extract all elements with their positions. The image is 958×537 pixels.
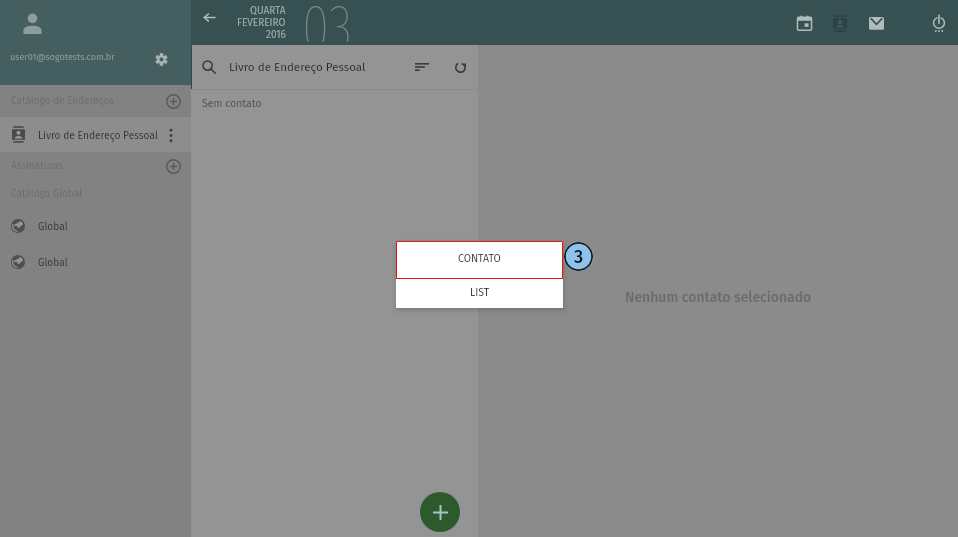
button[interactable]: Mail — [858, 5, 894, 41]
staticText: 3 — [574, 246, 584, 268]
staticText: LIST — [470, 286, 490, 299]
staticText: FEVEREIRO — [237, 17, 286, 29]
button[interactable]: Add contact — [420, 492, 460, 532]
staticText: Sem contato — [202, 97, 262, 110]
staticText: Global — [38, 256, 68, 268]
staticText: QUARTA — [250, 5, 286, 17]
staticText: Livro de Endereço Pessoal — [38, 129, 158, 141]
button[interactable]: CONTATO — [396, 241, 563, 279]
button[interactable]: Contacts — [822, 5, 858, 41]
button[interactable]: Add — [162, 155, 184, 177]
staticText: Assinaturas — [11, 160, 64, 172]
button[interactable]: Calendar — [786, 5, 822, 41]
button[interactable]: Settings — [150, 48, 172, 70]
button[interactable]: Add — [162, 90, 184, 112]
staticText: 03 — [302, 0, 353, 42]
button[interactable]: Search — [196, 54, 222, 80]
button[interactable]: Global — [0, 208, 191, 244]
staticText: Catálogo de Endereços — [11, 95, 114, 107]
staticText: Global — [38, 220, 68, 232]
staticText: Catálogo Global — [11, 188, 83, 200]
staticText: CONTATO — [458, 252, 501, 265]
staticText: user01@sogotests.com.br — [10, 52, 115, 63]
button[interactable]: Catálogo de Endereços — [0, 85, 191, 117]
button[interactable]: Global — [0, 244, 191, 280]
staticText: Nenhum contato selecionado — [625, 289, 812, 306]
button[interactable]: Refresh — [448, 54, 474, 80]
button[interactable]: Assinaturas — [0, 152, 191, 180]
button[interactable]: Back — [194, 2, 224, 32]
button[interactable]: Sort — [409, 54, 435, 80]
button[interactable]: More options — [161, 125, 181, 145]
staticText: Livro de Endereço Pessoal — [229, 60, 366, 74]
button[interactable]: Livro de Endereço Pessoal — [0, 117, 191, 152]
button[interactable]: Power — [921, 5, 957, 41]
button[interactable]: LIST — [396, 279, 563, 308]
staticText: 2016 — [266, 29, 286, 41]
